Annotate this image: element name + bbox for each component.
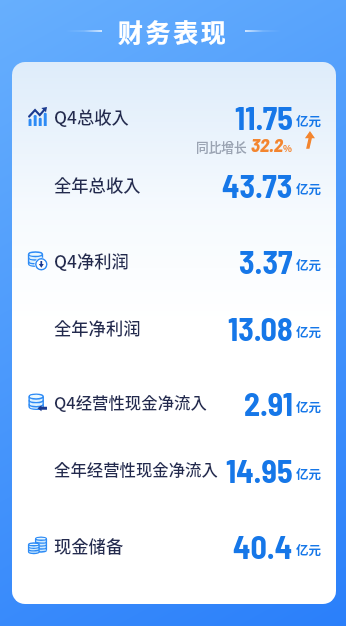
staticText: 亿元 <box>296 540 322 558</box>
staticText: 14.95 <box>226 451 293 487</box>
staticText: 亿元 <box>296 464 322 482</box>
staticText: 全年净利润 <box>54 315 141 340</box>
staticText: 11.75 <box>235 98 293 134</box>
staticText: 13.08 <box>228 309 293 345</box>
button[interactable]: 全年净利润 <box>12 309 336 345</box>
staticText: 亿元 <box>296 322 322 340</box>
staticText: 2.91 <box>244 384 293 420</box>
button[interactable]: Operating cash flow <box>12 384 336 420</box>
button[interactable]: 全年经营性现金净流入 <box>12 451 336 487</box>
staticText: 全年经营性现金净流入 <box>54 457 218 481</box>
staticText: 全年总收入 <box>54 172 141 197</box>
button[interactable]: Cash reserve <box>12 527 336 563</box>
button[interactable]: 全年总收入 <box>12 166 336 202</box>
staticText: Q4净利润 <box>54 248 129 273</box>
staticText: 亿元 <box>296 397 322 415</box>
staticText: % <box>283 141 292 155</box>
staticText: Q4经营性现金净流入 <box>54 390 207 414</box>
button[interactable]: Revenue chart <box>12 98 336 134</box>
staticText: 亿元 <box>296 179 322 197</box>
staticText: 现金储备 <box>54 533 124 558</box>
staticText: 财务表现 <box>118 13 229 49</box>
staticText: 3.37 <box>239 242 293 278</box>
other: Operating cash flow <box>28 393 47 412</box>
staticText: 32.2 <box>251 133 283 156</box>
staticText: 43.73 <box>222 166 293 202</box>
staticText: 亿元 <box>296 111 322 129</box>
staticText: 同比增长 <box>196 137 247 155</box>
other: Net profit <box>28 251 47 270</box>
staticText: 40.4 <box>233 527 293 563</box>
other: Cash reserve <box>28 536 47 555</box>
staticText: 亿元 <box>296 255 322 273</box>
staticText: Q4总收入 <box>54 104 129 129</box>
button[interactable]: Net profit <box>12 242 336 278</box>
other: Revenue chart <box>28 107 47 126</box>
